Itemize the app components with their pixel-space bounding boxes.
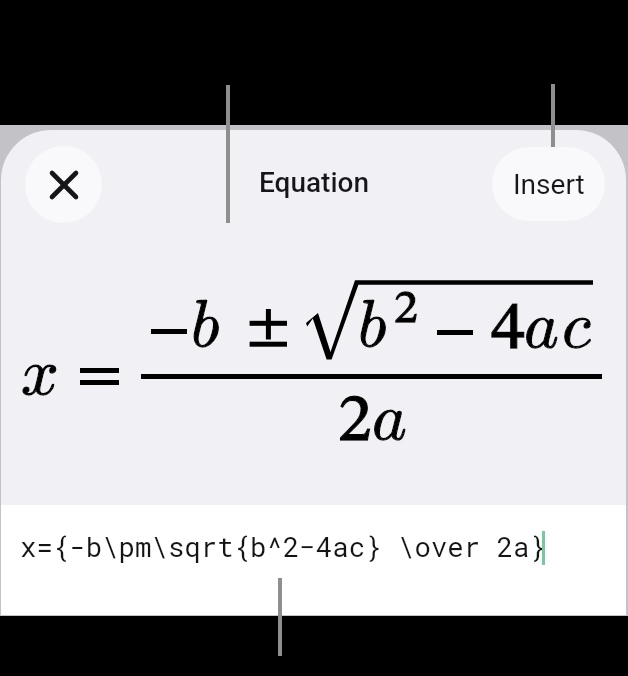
staticText: 2 bbox=[394, 285, 418, 333]
staticText: 𝑏 bbox=[358, 293, 387, 359]
staticText: Equation bbox=[259, 166, 370, 199]
staticText: 𝑥 bbox=[21, 341, 59, 407]
staticText: 2 bbox=[394, 285, 418, 333]
staticText: 𝑎 bbox=[372, 386, 407, 452]
staticText: 2 bbox=[338, 388, 372, 456]
staticText: 𝑎 bbox=[372, 386, 407, 452]
staticText: 4 bbox=[491, 296, 525, 364]
staticText: 𝑥 bbox=[21, 341, 59, 407]
button[interactable]: Insert bbox=[492, 147, 605, 221]
staticText: 𝑏 bbox=[358, 293, 387, 359]
staticText: 4 bbox=[491, 296, 525, 364]
button[interactable]: Close bbox=[25, 146, 102, 223]
staticText: 𝑐 bbox=[562, 294, 591, 360]
staticText: Insert bbox=[513, 168, 585, 201]
staticText: 2 bbox=[338, 388, 372, 456]
staticText: 𝑏 bbox=[191, 293, 220, 359]
staticText: 𝑎 bbox=[524, 294, 559, 360]
staticText: 𝑐 bbox=[562, 294, 591, 360]
staticText: 𝑏 bbox=[191, 293, 220, 359]
staticText: 𝑎 bbox=[524, 294, 559, 360]
staticText: x={-b\pm\sqrt{b^2−4ac} \over 2a} bbox=[20, 528, 546, 564]
